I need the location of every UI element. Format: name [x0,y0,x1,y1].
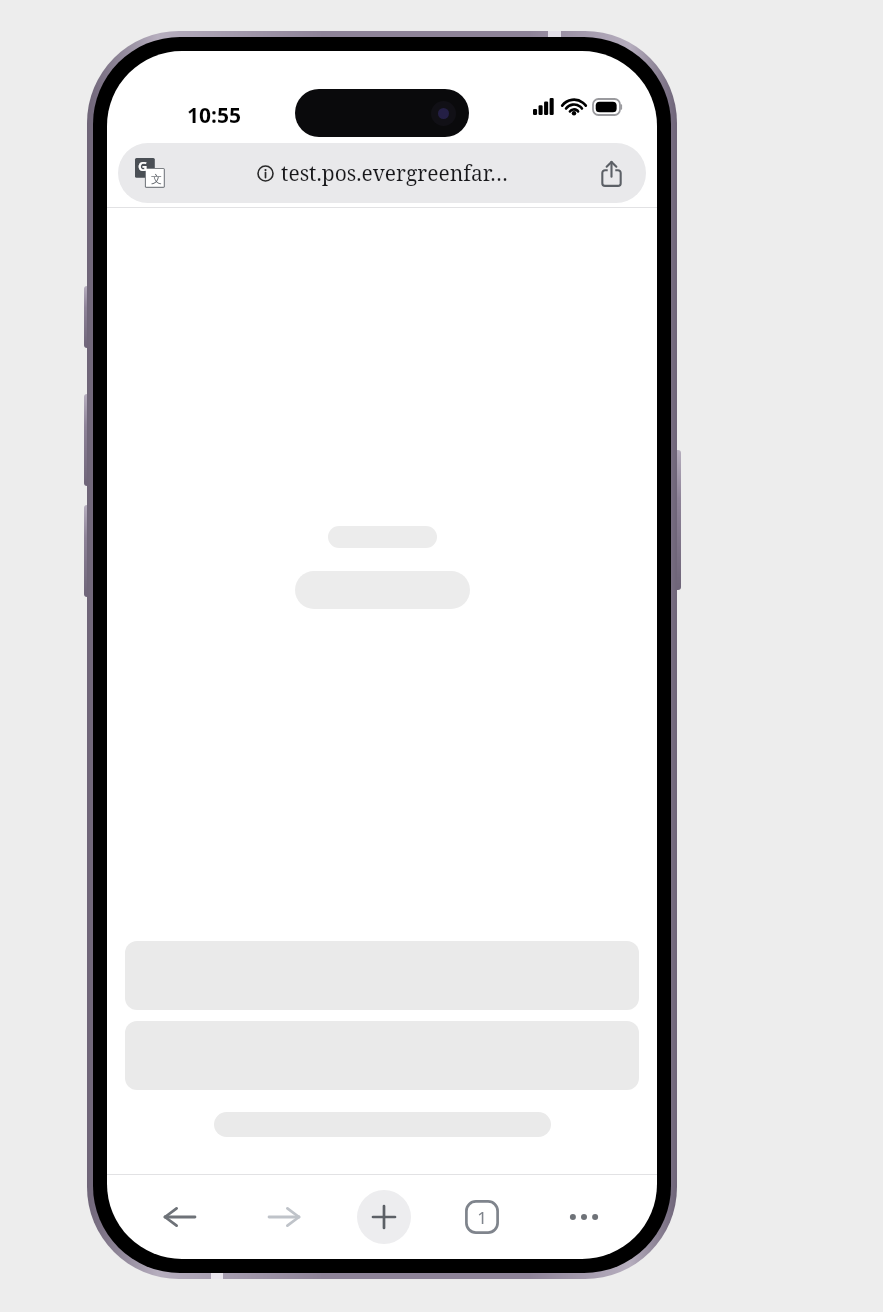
button[interactable]: Translate [118,143,646,203]
button[interactable]: Tabs [453,1188,511,1246]
button[interactable]: Forward [253,1186,315,1248]
staticText: 文 [151,172,162,186]
staticText: test.pos.evergreenfar… [281,159,508,188]
staticText: 1 [477,1206,487,1229]
button[interactable]: New tab [357,1190,411,1244]
button[interactable]: Translate [130,153,170,193]
button[interactable]: More [553,1186,615,1248]
staticText: G [138,157,148,175]
button[interactable]: Back [149,1186,211,1248]
button[interactable]: Share [590,152,632,194]
staticText: 10:55 [187,101,241,130]
